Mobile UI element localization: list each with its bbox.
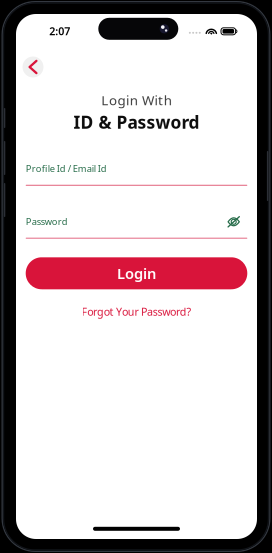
- staticText: 2:07: [49, 24, 70, 38]
- staticText: Login With: [101, 91, 172, 109]
- button[interactable]: Forgot Your Password?: [81, 303, 191, 319]
- button[interactable]: Login: [26, 257, 247, 289]
- staticText: Forgot Your Password?: [81, 304, 191, 319]
- staticText: Profile Id / Email Id: [26, 162, 107, 175]
- button[interactable]: Show password: [227, 216, 240, 228]
- button[interactable]: Back: [22, 56, 43, 77]
- staticText: Password: [26, 215, 68, 228]
- staticText: Login: [117, 264, 156, 283]
- staticText: ID & Password: [73, 110, 199, 133]
